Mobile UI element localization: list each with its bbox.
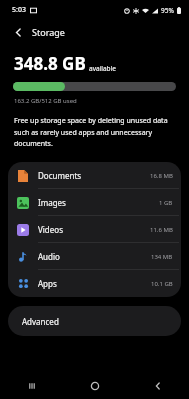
staticText: 163.2 GB/512 GB used <box>14 97 77 105</box>
staticText: 134 MB <box>151 253 173 261</box>
staticText: 1 GB <box>159 199 173 207</box>
button[interactable]: Documents <box>8 162 181 189</box>
staticText: Free up storage space by deleting unused… <box>14 116 173 148</box>
button[interactable]: Advanced <box>8 306 181 336</box>
button[interactable]: Audio <box>8 243 181 270</box>
staticText: available <box>89 64 116 73</box>
staticText: Videos <box>38 224 63 235</box>
staticText: 95% <box>161 6 174 15</box>
button[interactable]: Back <box>126 373 189 399</box>
button[interactable]: Images <box>8 189 181 216</box>
staticText: Advanced <box>22 316 59 327</box>
staticText: 5:03 <box>12 5 26 15</box>
staticText: Documents <box>38 170 82 181</box>
button[interactable]: Back <box>9 23 27 41</box>
button[interactable]: Apps <box>8 270 181 297</box>
button[interactable]: Videos <box>8 216 181 243</box>
button[interactable]: Home <box>63 373 126 399</box>
staticText: 11.6 MB <box>150 226 173 234</box>
staticText: 348.8 GB <box>14 52 86 75</box>
staticText: Apps <box>38 278 57 289</box>
staticText: 10.1 GB <box>151 280 173 288</box>
staticText: 16.8 MB <box>150 172 173 180</box>
staticText: Audio <box>38 251 60 262</box>
button[interactable]: Recents <box>0 373 63 399</box>
staticText: Images <box>38 197 66 208</box>
staticText: Storage <box>32 26 65 38</box>
